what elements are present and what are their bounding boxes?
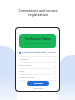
button[interactable]: Verification Status <box>19 34 56 48</box>
staticText: Personal information <box>22 51 47 54</box>
button[interactable]: Phone number <box>19 75 56 80</box>
button[interactable]: Email <box>19 69 56 74</box>
staticText: Need help? <box>33 87 43 90</box>
button[interactable]: Full name <box>19 57 56 62</box>
staticText: Convenient and secure registration <box>18 8 58 17</box>
staticText: Full name <box>19 58 29 61</box>
staticText: Date of birth <box>19 64 32 67</box>
staticText: Phone number <box>19 76 34 79</box>
staticText: Email <box>19 70 25 73</box>
staticText: Verification Status <box>25 37 51 41</box>
button[interactable]: Date of birth <box>19 63 56 68</box>
button[interactable]: Continue <box>27 81 49 86</box>
staticText: Continue <box>34 82 43 85</box>
staticText: Your account is fully verified <box>26 42 51 45</box>
